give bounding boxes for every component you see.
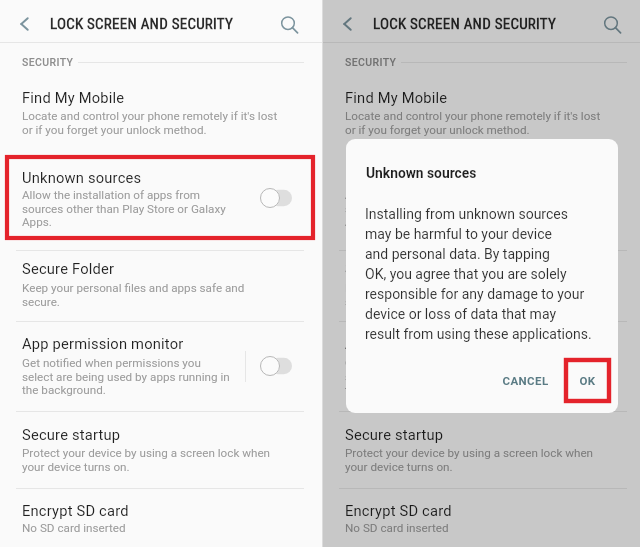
button[interactable]: CANCEL — [492, 362, 558, 398]
staticText: OK — [579, 374, 596, 387]
staticText: Locate and control your phone remotely i… — [22, 109, 278, 136]
staticText: LOCK SCREEN AND SECURITY — [373, 15, 557, 33]
button[interactable]: Back — [325, 3, 367, 45]
button[interactable] — [0, 79, 322, 147]
button[interactable] — [0, 416, 322, 484]
staticText: Unknown sources — [22, 169, 142, 186]
button[interactable] — [0, 159, 322, 226]
button[interactable] — [323, 159, 640, 226]
staticText: Secure Folder — [22, 260, 115, 277]
staticText: App permission monitor — [345, 335, 507, 352]
button[interactable] — [323, 79, 640, 147]
button[interactable]: Search — [268, 2, 310, 44]
staticText: SECURITY — [22, 56, 74, 68]
staticText: LOCK SCREEN AND SECURITY — [50, 15, 234, 33]
staticText: Allow the installation of apps from sour… — [345, 188, 549, 228]
staticText: App permission monitor — [22, 335, 184, 352]
staticText: CANCEL — [502, 374, 549, 387]
staticText: Protect your device by using a screen lo… — [22, 446, 271, 473]
staticText: No SD card inserted — [345, 521, 449, 535]
staticText: Unknown sources — [345, 169, 465, 186]
staticText: Find My Mobile — [345, 89, 448, 106]
button[interactable] — [0, 325, 322, 394]
button[interactable] — [323, 250, 640, 319]
staticText: Secure startup — [22, 426, 121, 443]
staticText: Get notified when permissions you select… — [22, 356, 230, 396]
staticText: Protect your device by using a screen lo… — [345, 446, 594, 473]
button[interactable] — [323, 325, 640, 394]
button[interactable]: OK — [566, 362, 608, 398]
button[interactable] — [0, 492, 322, 547]
staticText: Unknown sources — [366, 165, 477, 181]
staticText: Encrypt SD card — [345, 502, 452, 519]
button[interactable]: Toggle App permission monitor — [583, 356, 615, 376]
staticText: Encrypt SD card — [22, 502, 129, 519]
button[interactable]: Toggle Unknown sources — [260, 188, 292, 208]
staticText: Allow the installation of apps from sour… — [22, 188, 226, 228]
button[interactable]: Toggle App permission monitor — [260, 356, 292, 376]
staticText: Secure Folder — [345, 260, 438, 277]
staticText: Installing from unknown sources may be h… — [365, 206, 592, 342]
button[interactable]: Search — [591, 2, 633, 44]
staticText: Keep your personal files and apps safe a… — [22, 281, 245, 308]
staticText: Locate and control your phone remotely i… — [345, 109, 601, 136]
staticText: SECURITY — [345, 56, 397, 68]
button[interactable] — [323, 416, 640, 484]
button[interactable]: Back — [2, 3, 44, 45]
staticText: Secure startup — [345, 426, 444, 443]
staticText: Get notified when permissions you select… — [345, 356, 553, 396]
button[interactable] — [0, 250, 322, 319]
staticText: Find My Mobile — [22, 89, 125, 106]
button[interactable] — [323, 492, 640, 547]
staticText: Keep your personal files and apps safe a… — [345, 281, 568, 308]
staticText: No SD card inserted — [22, 521, 126, 535]
